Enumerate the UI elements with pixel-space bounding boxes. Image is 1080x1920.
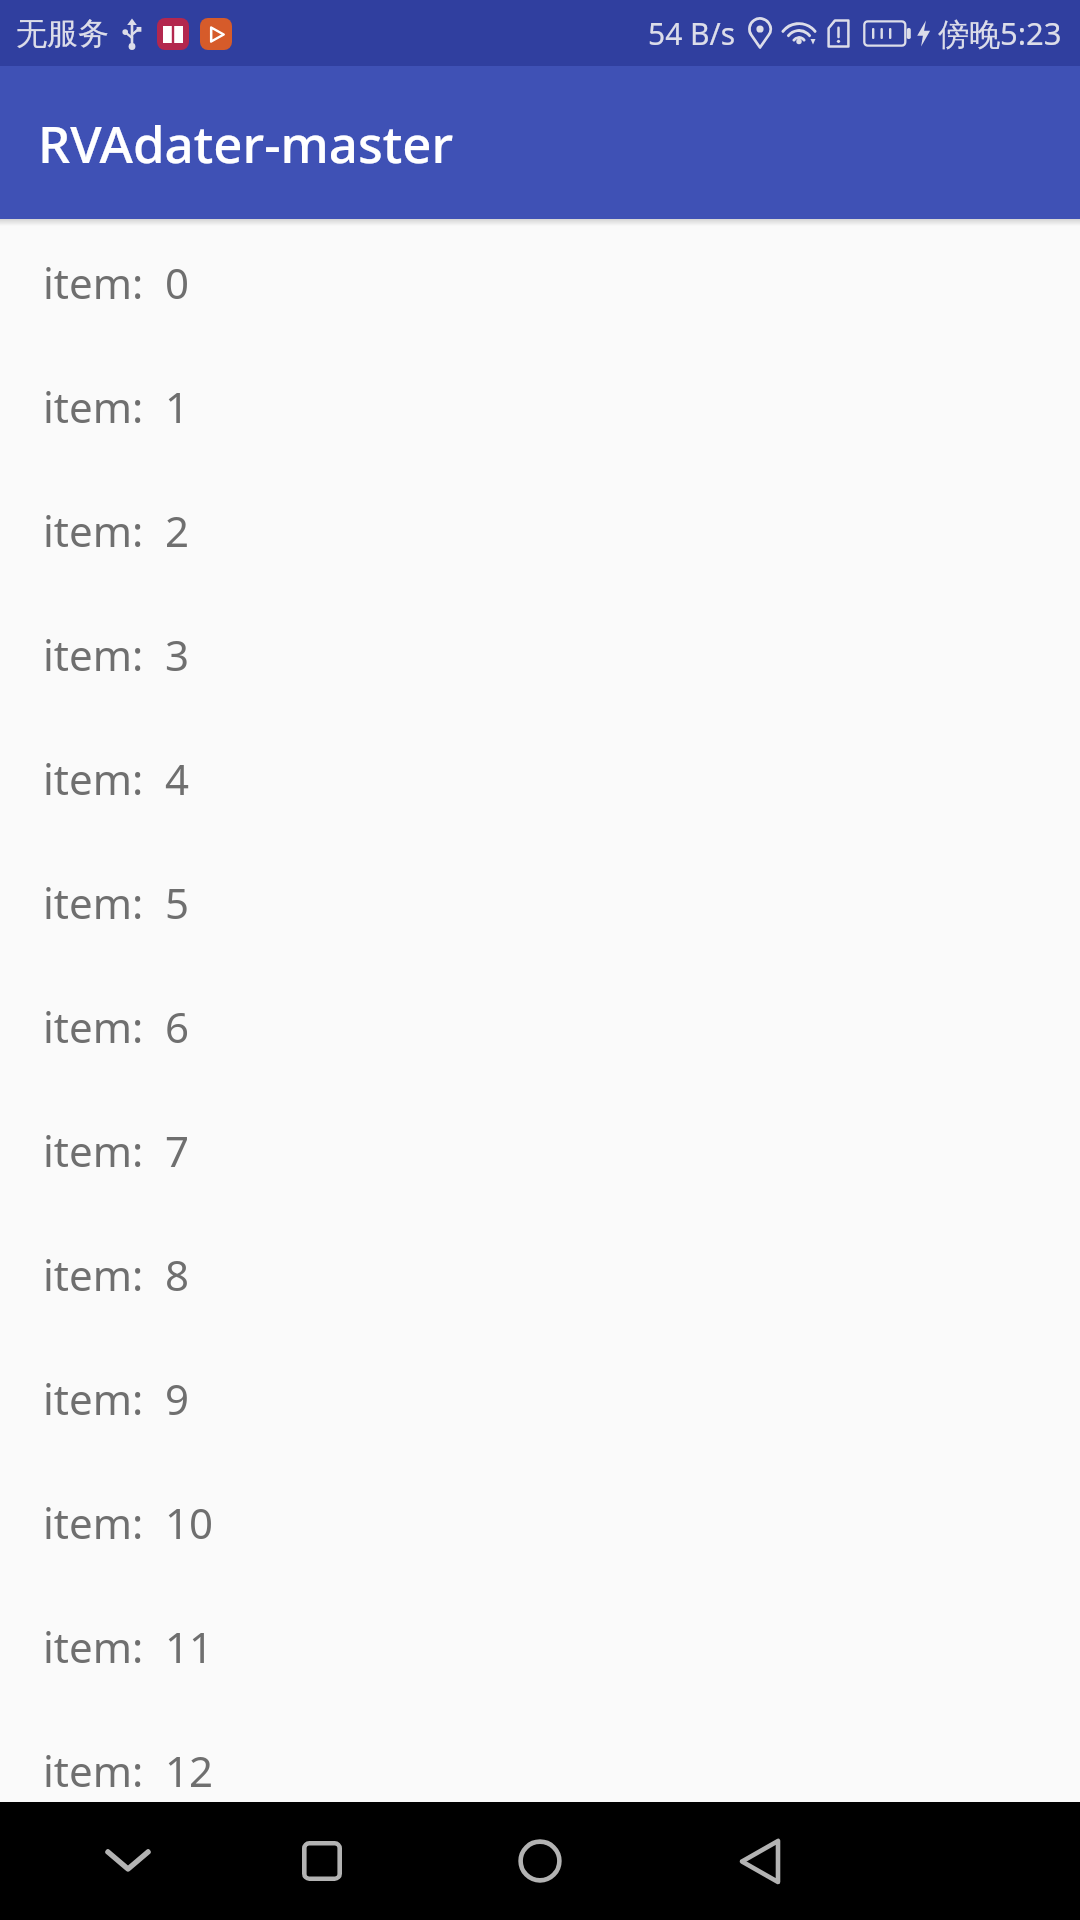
staticText: item: 12 [43, 1742, 214, 1799]
button[interactable]: item: 9 [0, 1336, 1080, 1460]
button[interactable]: item: 0 [0, 220, 1080, 344]
staticText: 傍晚5:23 [938, 12, 1062, 54]
staticText: item: 3 [43, 626, 190, 683]
button[interactable]: item: 5 [0, 840, 1080, 964]
staticText: item: 1 [43, 378, 190, 435]
staticText: item: 11 [43, 1618, 214, 1675]
staticText: 54 B/s [648, 13, 736, 54]
button[interactable]: Hide keyboard [88, 1802, 168, 1920]
staticText: item: 4 [43, 750, 190, 807]
staticText: item: 9 [43, 1370, 190, 1427]
button[interactable]: item: 1 [0, 344, 1080, 468]
button[interactable]: item: 11 [0, 1584, 1080, 1708]
staticText: item: 5 [43, 874, 190, 931]
button[interactable]: item: 8 [0, 1212, 1080, 1336]
staticText: item: 6 [43, 998, 190, 1055]
button[interactable]: item: 7 [0, 1088, 1080, 1212]
button[interactable]: item: 2 [0, 468, 1080, 592]
button[interactable]: item: 4 [0, 716, 1080, 840]
staticText: 无服务 [16, 14, 109, 53]
staticText: item: 8 [43, 1246, 190, 1303]
staticText: item: 2 [43, 502, 190, 559]
staticText: RVAdater-master [38, 108, 454, 177]
button[interactable]: item: 10 [0, 1460, 1080, 1584]
button[interactable]: Recent apps [282, 1802, 362, 1920]
button[interactable]: Back [720, 1802, 800, 1920]
staticText: item: 10 [43, 1494, 214, 1551]
button[interactable]: Home [500, 1802, 580, 1920]
staticText: item: 0 [43, 254, 190, 311]
button[interactable]: item: 3 [0, 592, 1080, 716]
staticText: item: 7 [43, 1122, 190, 1179]
button[interactable]: item: 12 [0, 1708, 1080, 1832]
button[interactable]: item: 6 [0, 964, 1080, 1088]
